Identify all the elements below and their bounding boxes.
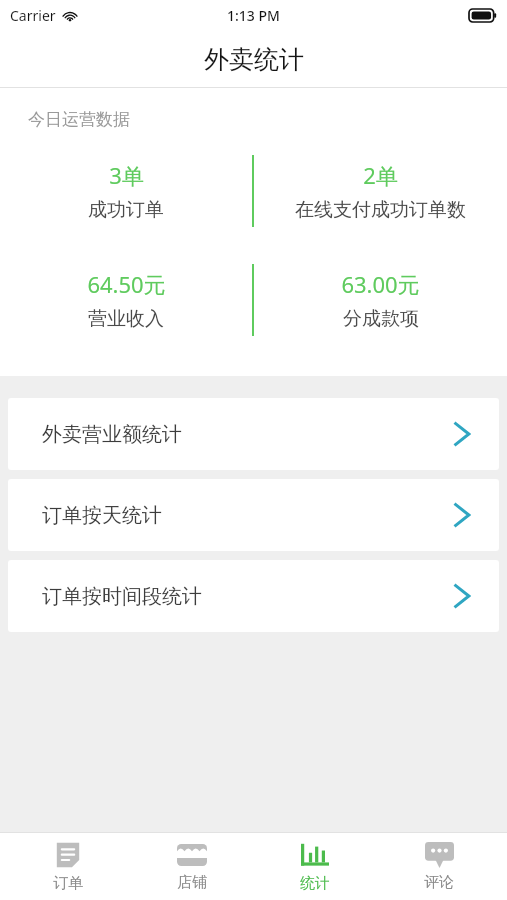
- staticText: 订单按时间段统计: [42, 584, 453, 609]
- button[interactable]: 店铺: [137, 842, 247, 892]
- staticText: 外卖统计: [204, 44, 304, 75]
- staticText: 2单: [363, 160, 398, 190]
- button[interactable]: 统计: [260, 841, 370, 893]
- button[interactable]: 订单: [13, 841, 123, 893]
- button[interactable]: 订单按天统计: [8, 479, 499, 551]
- staticText: 1:13 PM: [227, 6, 280, 25]
- staticText: 在线支付成功订单数: [295, 198, 466, 222]
- staticText: 统计: [300, 874, 330, 893]
- staticText: 营业收入: [88, 307, 164, 331]
- button[interactable]: 订单按时间段统计: [8, 560, 499, 632]
- staticText: 3单: [109, 160, 144, 190]
- staticText: 订单按天统计: [42, 503, 453, 528]
- staticText: 订单: [53, 874, 83, 893]
- staticText: Carrier: [10, 6, 56, 25]
- button[interactable]: 外卖营业额统计: [8, 398, 499, 470]
- staticText: 分成款项: [343, 307, 419, 331]
- staticText: 成功订单: [88, 198, 164, 222]
- staticText: 64.50元: [87, 269, 166, 299]
- staticText: 今日运营数据: [28, 109, 130, 130]
- staticText: 外卖营业额统计: [42, 422, 453, 447]
- staticText: 评论: [424, 873, 454, 892]
- staticText: 店铺: [177, 873, 207, 892]
- button[interactable]: 评论: [384, 842, 494, 892]
- staticText: 63.00元: [341, 269, 420, 299]
